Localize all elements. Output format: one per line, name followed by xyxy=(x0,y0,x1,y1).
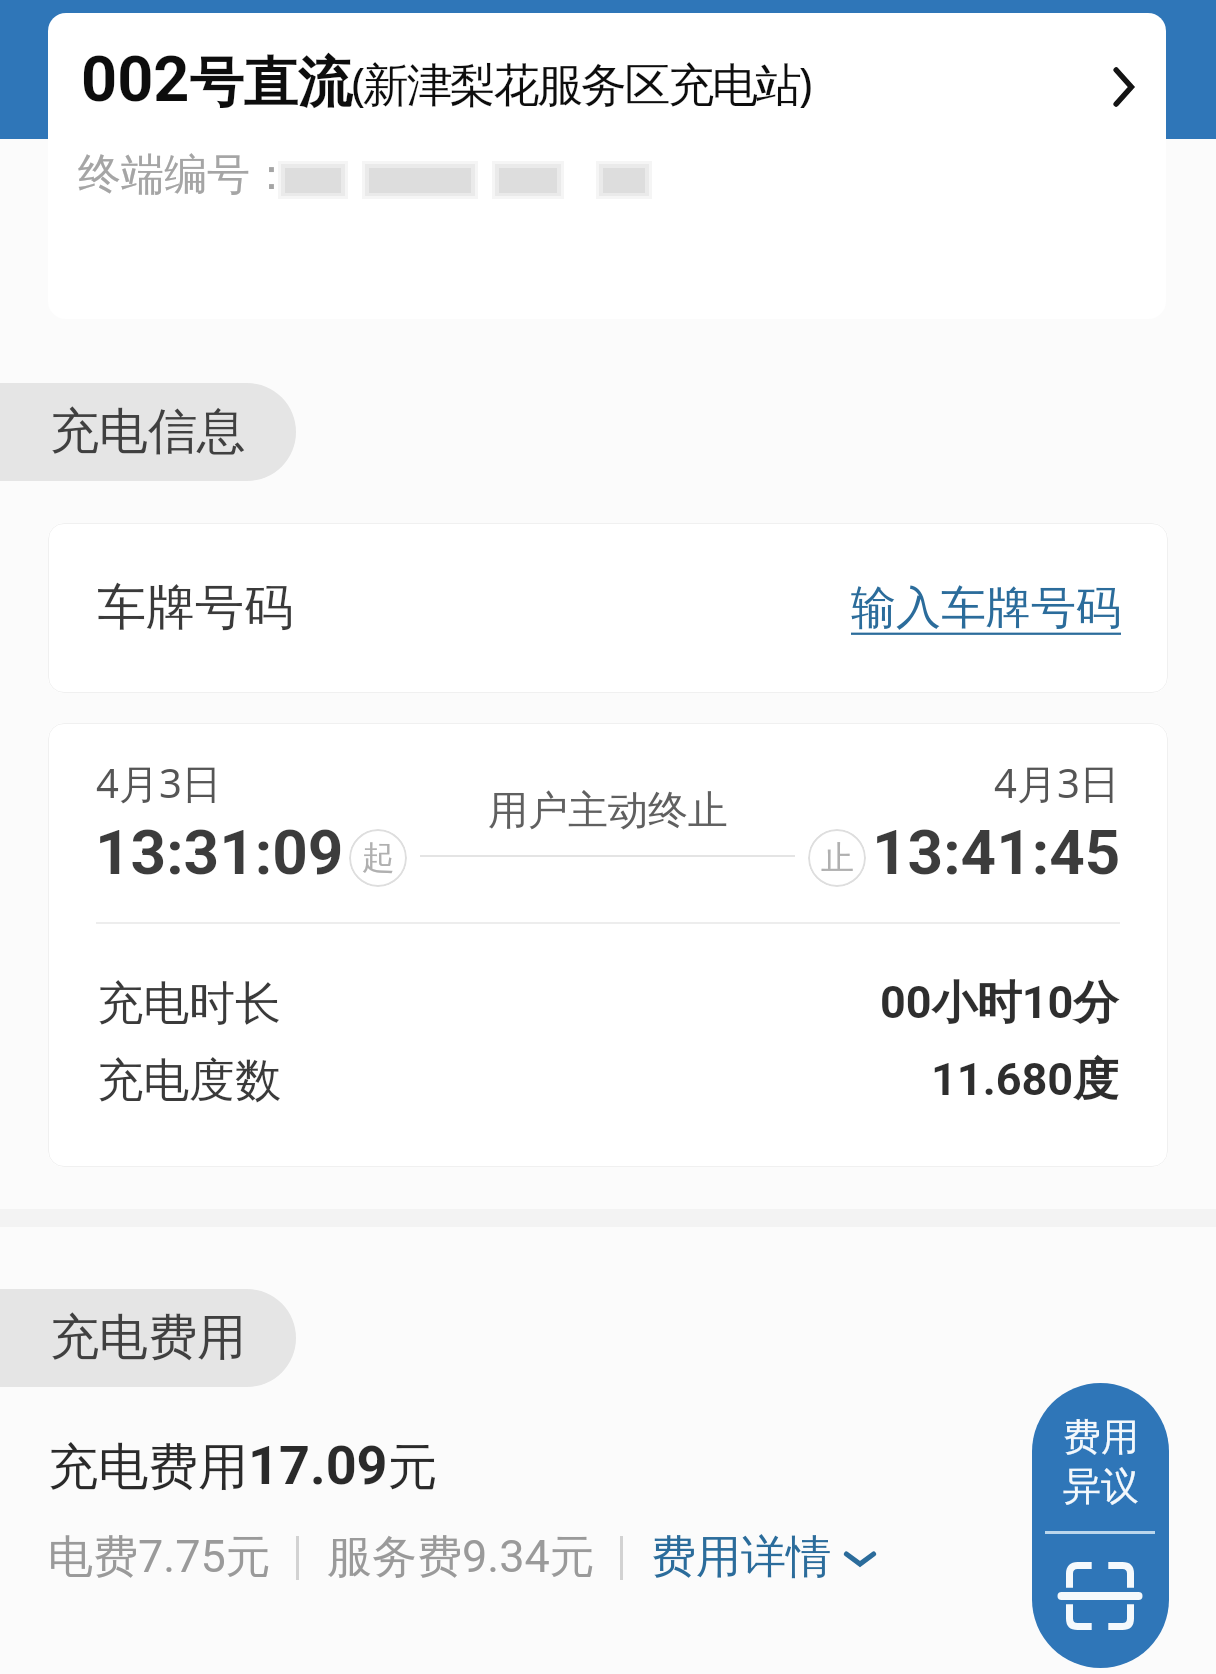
staticText: 费用 xyxy=(1063,1413,1139,1461)
staticText: 起 xyxy=(362,837,395,879)
button[interactable]: 费用异议 扫码 xyxy=(1032,1383,1169,1668)
staticText: 电费7.75元 xyxy=(48,1529,271,1586)
staticText: 费用详情 xyxy=(651,1529,831,1586)
staticText: 车牌号码 xyxy=(97,577,293,639)
staticText: 00小时10分 xyxy=(880,975,1119,1032)
staticText: 13:31:09 xyxy=(95,816,344,889)
staticText: 002号直流(新津梨花服务区充电站) xyxy=(81,43,811,117)
staticText: 异议 xyxy=(1063,1462,1139,1510)
staticText: 充电度数 xyxy=(97,1052,281,1110)
staticText: 11.680度 xyxy=(931,1052,1119,1109)
staticText: 4月3日 xyxy=(96,755,222,810)
staticText: 充电费用17.09元 xyxy=(48,1434,438,1499)
button[interactable]: 输入车牌号码 xyxy=(851,580,1121,637)
staticText: 充电时长 xyxy=(97,975,281,1033)
staticText: 充电费用 xyxy=(50,1307,246,1369)
button[interactable]: 002号直流(新津梨花服务区充电站) xyxy=(48,13,1166,319)
staticText: 止 xyxy=(821,837,854,879)
button[interactable]: 充电信息 xyxy=(0,383,296,481)
button[interactable]: 费用详情 xyxy=(651,1529,877,1586)
staticText: 服务费9.34元 xyxy=(327,1529,595,1586)
staticText: 终端编号： xyxy=(78,148,293,202)
button[interactable]: 充电费用 xyxy=(0,1289,296,1387)
button[interactable]: Open station detail xyxy=(1094,57,1154,117)
button[interactable]: 车牌号码 xyxy=(48,523,1168,693)
staticText: 充电信息 xyxy=(50,401,246,463)
staticText: 4月3日 xyxy=(994,755,1120,810)
staticText: 13:41:45 xyxy=(872,816,1121,889)
staticText: 用户主动终止 xyxy=(488,785,728,835)
